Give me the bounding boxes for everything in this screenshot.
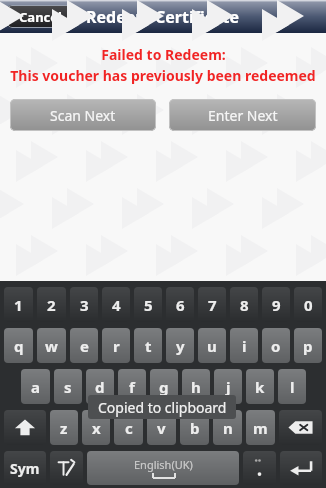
button[interactable]: Shift [4,410,46,445]
staticText: c [125,418,133,438]
staticText: v [157,418,166,438]
staticText: Sym [10,459,40,478]
staticText: q [14,336,24,356]
button[interactable]: 0 [294,287,322,322]
button[interactable]: q [4,328,33,363]
button[interactable]: s [54,369,82,404]
button[interactable]: 7 [198,287,226,322]
staticText: This voucher has previously been redeeme… [10,66,316,85]
button[interactable]: h [182,369,210,404]
staticText: y [176,336,185,356]
button[interactable]: u [198,328,226,363]
button[interactable]: t [134,328,162,363]
staticText: z [60,418,68,438]
staticText: 6 [176,295,185,315]
staticText: r [113,336,120,356]
button[interactable]: j [214,369,242,404]
staticText: n [223,418,233,438]
button[interactable]: a [21,369,50,404]
button[interactable]: 5 [134,287,162,322]
staticText: 1 [14,295,23,315]
button[interactable]: b [180,410,209,445]
button[interactable]: Cancel [7,5,73,28]
button[interactable]: c [114,410,143,445]
button[interactable]: 2 [37,287,66,322]
button[interactable]: x [82,410,110,445]
staticText: g [159,377,169,397]
staticText: b [190,418,200,438]
staticText: t [145,336,152,356]
button[interactable]: 1 [4,287,33,322]
staticText: w [45,336,58,356]
staticText: k [255,377,265,397]
staticText: Redeem Certificate [86,6,240,28]
button[interactable]: l [278,369,306,404]
button[interactable]: m [246,410,275,445]
staticText: s [64,377,72,397]
staticText: e [80,336,89,356]
button[interactable]: Handwriting input [50,451,83,485]
staticText: English(UK) [134,457,193,472]
staticText: Failed to Redeem: [101,45,226,64]
button[interactable]: 6 [166,287,194,322]
staticText: Scan Next [50,106,116,125]
button[interactable]: r [102,328,130,363]
button[interactable]: k [246,369,274,404]
button[interactable]: Period [243,451,276,485]
button[interactable]: Backspace [279,410,322,445]
staticText: 3 [80,295,89,315]
staticText: 5 [144,295,153,315]
button[interactable]: n [213,410,242,445]
button[interactable]: Enter Next [169,99,316,131]
button[interactable]: Enter [280,451,322,485]
staticText: j [226,377,231,397]
button[interactable]: e [70,328,98,363]
staticText: i [242,336,247,356]
button[interactable]: v [147,410,176,445]
button[interactable]: p [294,328,322,363]
button[interactable]: w [37,328,66,363]
button[interactable]: g [150,369,178,404]
button[interactable]: 8 [230,287,258,322]
staticText: p [303,336,313,356]
staticText: Enter Next [208,106,278,125]
button[interactable]: 3 [70,287,98,322]
button[interactable]: 9 [262,287,290,322]
staticText: 4 [112,295,121,315]
staticText: Cancel [19,8,62,26]
button[interactable]: Sym [4,451,46,485]
button[interactable]: z [50,410,78,445]
staticText: Copied to clipboard [98,398,227,417]
button[interactable]: y [166,328,194,363]
button[interactable]: i [230,328,258,363]
staticText: x [92,418,101,438]
staticText: h [191,377,201,397]
staticText: o [271,336,281,356]
staticText: l [290,377,295,397]
button[interactable]: Scan Next [10,99,156,131]
button[interactable]: o [262,328,290,363]
staticText: 7 [208,295,217,315]
button[interactable]: f [118,369,146,404]
button[interactable]: Space, English (UK) [87,451,239,485]
staticText: 8 [240,295,249,315]
staticText: u [207,336,217,356]
staticText: 9 [272,295,281,315]
button[interactable]: 4 [102,287,130,322]
staticText: m [253,418,268,438]
staticText: f [129,377,135,397]
staticText: 2 [47,295,56,315]
staticText: 0 [304,295,313,315]
button[interactable]: d [86,369,114,404]
staticText: d [95,377,105,397]
staticText: a [31,377,40,397]
